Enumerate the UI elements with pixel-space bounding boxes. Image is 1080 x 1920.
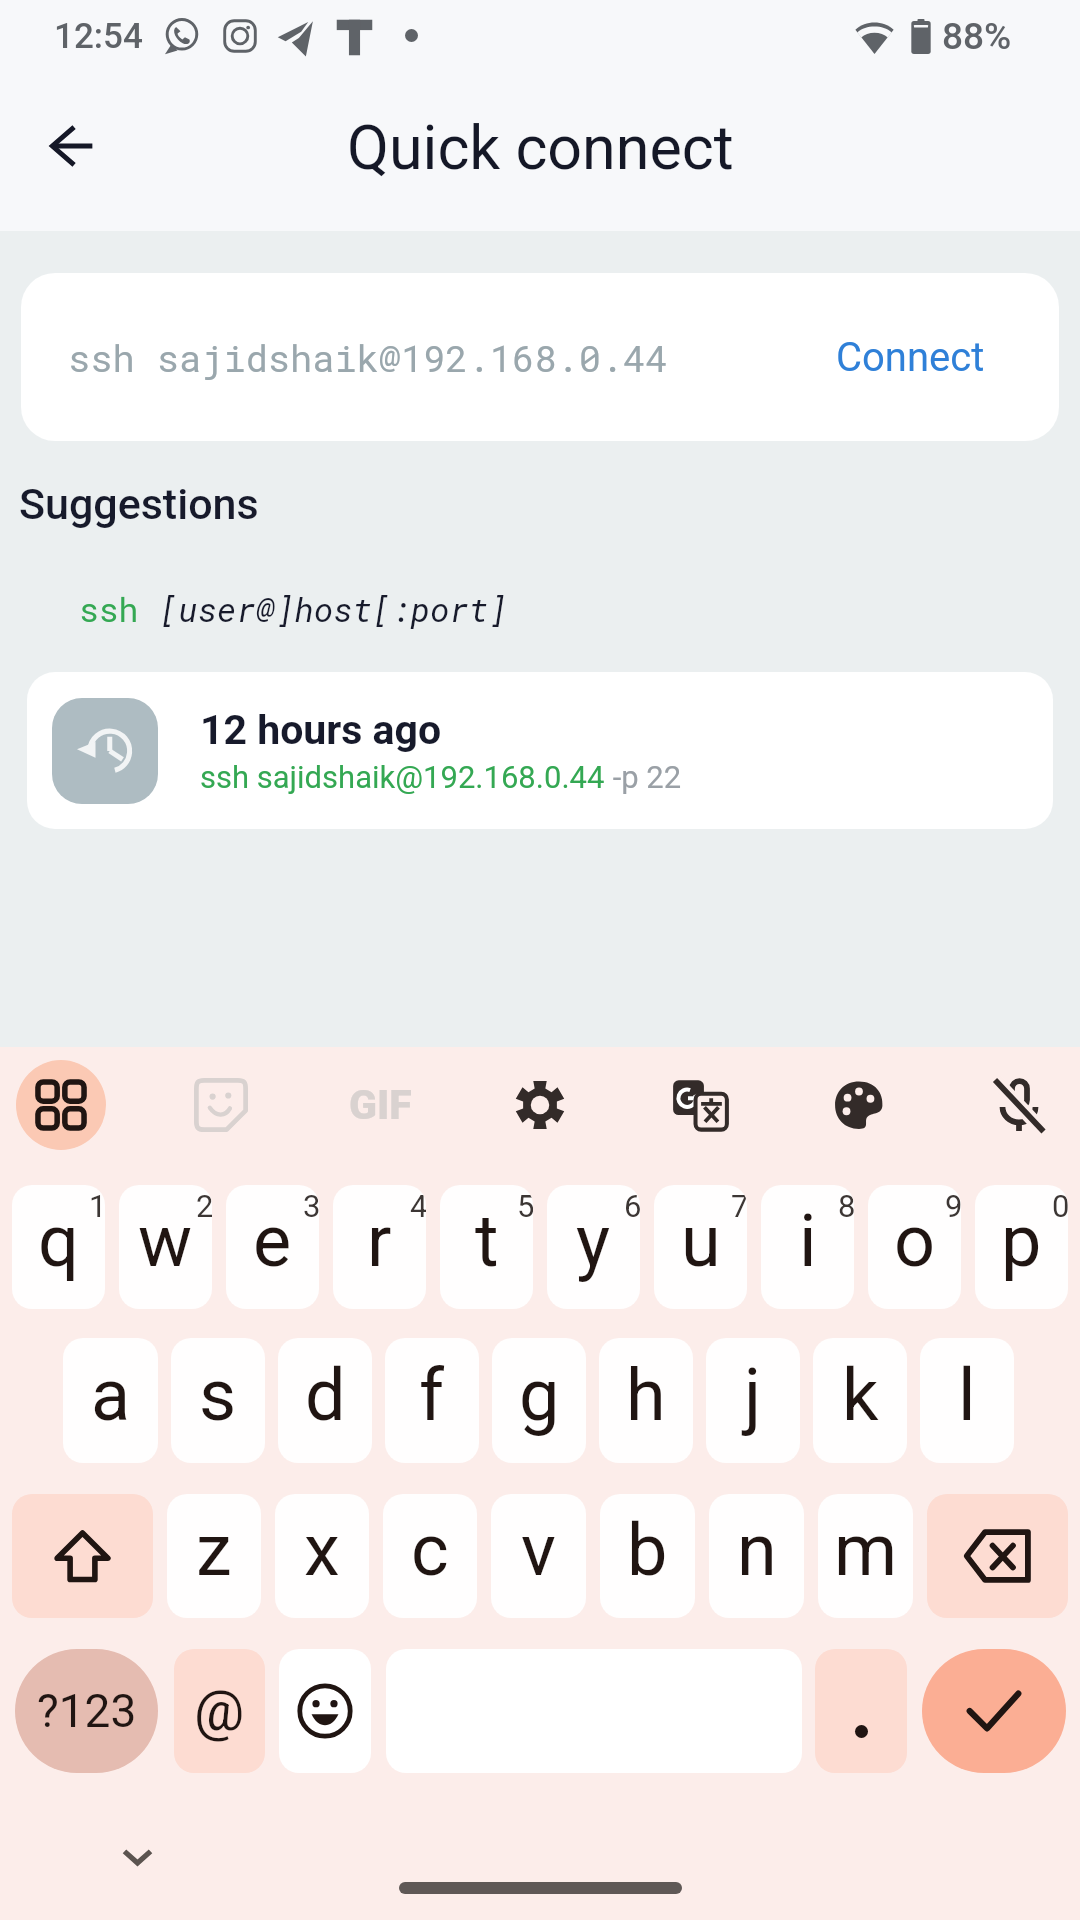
- button[interactable]: g: [492, 1338, 586, 1463]
- staticText: i: [799, 1199, 817, 1283]
- staticText: n: [737, 1508, 777, 1592]
- staticText: @: [194, 1678, 245, 1744]
- staticText: x: [304, 1508, 340, 1592]
- staticText: u: [681, 1199, 721, 1283]
- staticText: 12:54: [54, 16, 143, 57]
- button[interactable]: y: [547, 1185, 640, 1309]
- button[interactable]: @: [174, 1649, 265, 1773]
- button[interactable]: Theme: [814, 1060, 904, 1150]
- button[interactable]: Emoji: [279, 1649, 371, 1773]
- button[interactable]: Back: [23, 98, 119, 194]
- staticText: s: [199, 1353, 237, 1437]
- button[interactable]: l: [920, 1338, 1014, 1463]
- button[interactable]: Backspace: [927, 1494, 1068, 1618]
- staticText: r: [367, 1199, 392, 1283]
- staticText: d: [305, 1353, 346, 1437]
- staticText: t: [475, 1199, 499, 1283]
- button[interactable]: o: [868, 1185, 961, 1309]
- staticText: a: [91, 1353, 131, 1437]
- button[interactable]: Apps: [16, 1060, 106, 1150]
- staticText: ssh sajidshaik@192.168.0.44: [68, 333, 668, 382]
- staticText: 1: [89, 1188, 105, 1224]
- button[interactable]: Voice input off: [974, 1060, 1064, 1150]
- button[interactable]: m: [818, 1494, 913, 1618]
- button[interactable]: z: [167, 1494, 261, 1618]
- staticText: v: [521, 1508, 556, 1592]
- button[interactable]: w: [119, 1185, 212, 1309]
- staticText: GIF: [349, 1081, 412, 1129]
- button[interactable]: a: [63, 1338, 158, 1463]
- staticText: j: [744, 1353, 762, 1437]
- staticText: [user@]host[:port]: [159, 587, 508, 631]
- staticText: 0: [1052, 1188, 1068, 1224]
- button[interactable]: v: [491, 1494, 586, 1618]
- button[interactable]: Period: [815, 1649, 907, 1773]
- button[interactable]: u: [654, 1185, 747, 1309]
- button[interactable]: Translate: [655, 1060, 745, 1150]
- staticText: Quick connect: [347, 112, 734, 183]
- button[interactable]: ssh sajidshaik@192.168.0.44: [21, 273, 1059, 441]
- button[interactable]: Connect: [826, 324, 995, 391]
- button[interactable]: q: [12, 1185, 105, 1309]
- staticText: Suggestions: [19, 479, 259, 529]
- button[interactable]: s: [171, 1338, 265, 1463]
- staticText: 5: [517, 1188, 533, 1224]
- staticText: c: [411, 1508, 449, 1592]
- button[interactable]: h: [599, 1338, 693, 1463]
- staticText: k: [842, 1353, 879, 1437]
- button[interactable]: c: [383, 1494, 477, 1618]
- staticText: 7: [731, 1188, 747, 1224]
- staticText: f: [419, 1353, 445, 1437]
- button[interactable]: n: [709, 1494, 804, 1618]
- staticText: 2: [196, 1188, 212, 1224]
- button[interactable]: i: [761, 1185, 854, 1309]
- staticText: w: [138, 1199, 193, 1283]
- button[interactable]: k: [813, 1338, 907, 1463]
- button[interactable]: t: [440, 1185, 533, 1309]
- staticText: m: [834, 1508, 898, 1592]
- staticText: g: [519, 1353, 560, 1437]
- button[interactable]: d: [278, 1338, 372, 1463]
- button[interactable]: GIF: [335, 1060, 425, 1150]
- button[interactable]: Stickers: [176, 1060, 266, 1150]
- staticText: 9: [945, 1188, 961, 1224]
- button[interactable]: ?123: [15, 1649, 158, 1773]
- staticText: ?123: [37, 1684, 137, 1738]
- button[interactable]: 12 hours ago: [27, 672, 1053, 829]
- button[interactable]: j: [706, 1338, 800, 1463]
- button[interactable]: b: [600, 1494, 695, 1618]
- staticText: -p 22: [605, 759, 682, 795]
- staticText: 3: [303, 1188, 319, 1224]
- staticText: l: [958, 1353, 976, 1437]
- button[interactable]: f: [385, 1338, 479, 1463]
- button[interactable]: Hide keyboard: [97, 1817, 177, 1897]
- staticText: e: [253, 1199, 292, 1283]
- staticText: 8: [838, 1188, 854, 1224]
- staticText: y: [576, 1199, 611, 1283]
- staticText: o: [894, 1199, 936, 1283]
- button[interactable]: Shift: [12, 1494, 153, 1618]
- staticText: ssh sajidshaik@192.168.0.44: [200, 759, 605, 795]
- staticText: q: [38, 1199, 79, 1283]
- staticText: p: [1001, 1199, 1042, 1283]
- staticText: h: [626, 1353, 666, 1437]
- staticText: b: [627, 1508, 668, 1592]
- staticText: 6: [624, 1188, 640, 1224]
- button[interactable]: r: [333, 1185, 426, 1309]
- staticText: 4: [410, 1188, 426, 1224]
- button[interactable]: p: [975, 1185, 1068, 1309]
- button[interactable]: x: [275, 1494, 369, 1618]
- staticText: Connect: [836, 334, 985, 381]
- staticText: ssh: [79, 587, 159, 631]
- staticText: 12 hours ago: [200, 706, 442, 754]
- button[interactable]: Settings: [495, 1060, 585, 1150]
- staticText: 88%: [942, 15, 1012, 58]
- staticText: z: [196, 1508, 232, 1592]
- button[interactable]: Enter: [922, 1649, 1066, 1773]
- button[interactable]: e: [226, 1185, 319, 1309]
